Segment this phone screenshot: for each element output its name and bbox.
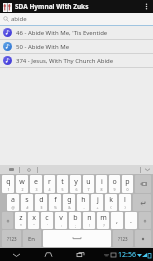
staticText: 8 — [100, 187, 103, 192]
button[interactable]: f — [49, 194, 61, 211]
staticText: : — [61, 223, 62, 228]
staticText: ( — [110, 205, 112, 210]
staticText: g — [67, 195, 72, 205]
button[interactable]: Enter — [133, 194, 151, 211]
staticText: w — [19, 177, 25, 187]
button[interactable]: l — [119, 194, 131, 211]
button[interactable]: Voice input — [135, 230, 151, 247]
button[interactable]: abide — [0, 13, 153, 25]
button[interactable]: Symbols — [113, 230, 133, 247]
staticText: r — [48, 177, 51, 187]
button[interactable]: q — [2, 175, 14, 193]
button[interactable]: d — [35, 194, 47, 211]
staticText: " — [33, 223, 35, 228]
staticText: 1 — [7, 187, 10, 192]
staticText: 4 — [48, 187, 51, 192]
button[interactable]: p — [122, 175, 133, 193]
button[interactable]: k — [105, 194, 117, 211]
button[interactable]: y — [70, 175, 81, 193]
staticText: u — [86, 177, 91, 187]
staticText: o — [112, 177, 117, 187]
staticText: j — [97, 195, 99, 205]
button[interactable]: Symbols — [2, 230, 21, 247]
staticText: z — [19, 213, 23, 223]
staticText: 0 — [126, 187, 129, 192]
staticText: p — [125, 177, 130, 187]
staticText: c — [45, 213, 49, 223]
button[interactable]: b — [69, 212, 81, 229]
button[interactable]: h — [77, 194, 89, 211]
staticText: En — [28, 235, 36, 243]
staticText: ?123 — [118, 236, 128, 242]
button[interactable]: r — [44, 175, 55, 193]
button[interactable]: o — [109, 175, 120, 193]
button[interactable]: Space — [43, 230, 111, 247]
button[interactable]: 374 - Jesus, With Thy Church Abide — [0, 54, 153, 68]
button[interactable]: Shift — [139, 212, 151, 229]
button[interactable]: g — [63, 194, 75, 211]
button[interactable]: Settings — [24, 165, 34, 174]
staticText: ! — [89, 223, 90, 228]
button[interactable]: Keyboard layout — [6, 165, 16, 174]
button[interactable]: z — [15, 212, 26, 229]
staticText: ' — [47, 223, 48, 228]
button[interactable]: i — [96, 175, 107, 193]
button[interactable]: x — [28, 212, 39, 229]
staticText: ) — [124, 205, 126, 210]
button[interactable]: Hide keyboard — [141, 165, 153, 174]
staticText: ?123 — [7, 236, 17, 242]
button[interactable]: t — [57, 175, 68, 193]
button[interactable]: Home — [32, 248, 64, 261]
staticText: , — [116, 216, 118, 226]
staticText: 7 — [87, 187, 90, 192]
button[interactable]: Recent apps — [64, 248, 96, 261]
button[interactable]: u — [83, 175, 94, 193]
button[interactable]: n — [83, 212, 95, 229]
staticText: a — [11, 195, 15, 205]
staticText: i — [101, 177, 103, 187]
staticText: $ — [40, 205, 43, 210]
staticText: 9 — [113, 187, 116, 192]
button[interactable]: a — [7, 194, 19, 211]
button[interactable]: App icon — [2, 2, 12, 12]
staticText: 374 - Jesus, With Thy Church Abide — [16, 57, 114, 65]
button[interactable]: c — [41, 212, 53, 229]
staticText: n — [87, 213, 92, 223]
button[interactable]: Language — [23, 230, 41, 247]
staticText: 46 - Abide With Me, 'Tis Eventide — [16, 29, 108, 37]
staticText: y — [74, 177, 78, 187]
staticText: 50 - Abide With Me — [16, 43, 70, 51]
staticText: 5 — [61, 187, 64, 192]
staticText: ? — [103, 223, 105, 228]
button[interactable]: 46 - Abide With Me, 'Tis Eventide — [0, 26, 153, 40]
button[interactable]: w — [16, 175, 28, 193]
staticText: l — [124, 195, 126, 205]
button[interactable]: Shift — [2, 212, 13, 229]
button[interactable]: s — [21, 194, 33, 211]
staticText: m — [100, 213, 107, 223]
staticText: 12:56 — [118, 250, 136, 260]
button[interactable]: , — [111, 212, 123, 229]
staticText: SDA Hymnal With Zuks — [15, 2, 89, 11]
button[interactable]: m — [97, 212, 109, 229]
staticText: x — [32, 213, 36, 223]
staticText: # — [26, 205, 29, 210]
staticText: 3 — [35, 187, 38, 192]
button[interactable]: v — [55, 212, 67, 229]
button[interactable]: Back — [0, 248, 32, 261]
staticText: abide — [11, 15, 27, 23]
staticText: s — [25, 195, 29, 205]
button[interactable]: e — [30, 175, 42, 193]
staticText: + — [96, 205, 99, 210]
staticText: @ — [11, 205, 15, 210]
button[interactable]: . — [125, 212, 137, 229]
staticText: b — [73, 213, 78, 223]
staticText: t — [61, 177, 64, 187]
button[interactable]: More options — [141, 0, 151, 13]
staticText: & — [68, 205, 71, 210]
button[interactable]: j — [91, 194, 103, 211]
button[interactable]: 50 - Abide With Me — [0, 40, 153, 54]
staticText: - — [83, 205, 85, 210]
staticText: h — [81, 195, 86, 205]
button[interactable]: Delete — [135, 175, 151, 193]
